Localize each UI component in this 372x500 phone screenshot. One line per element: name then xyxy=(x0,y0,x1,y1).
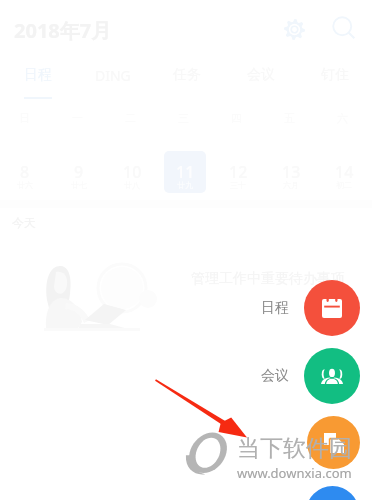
staticText: 管理工作中重要待办事项 xyxy=(191,270,345,288)
staticText: www.downxia.com xyxy=(237,464,352,482)
staticText: 当下软件园 xyxy=(237,434,352,463)
staticText: 日程 xyxy=(24,66,52,84)
staticText: 日程 xyxy=(261,299,289,317)
staticText: 廿九 xyxy=(177,180,193,190)
button[interactable]: New note xyxy=(307,416,360,469)
button[interactable]: Search xyxy=(329,13,359,43)
button[interactable]: 日程 xyxy=(304,280,360,336)
staticText: 今天 xyxy=(12,215,36,230)
button[interactable]: 会议 xyxy=(304,348,360,404)
staticText: 会议 xyxy=(261,367,289,385)
button[interactable]: Close menu xyxy=(306,486,359,500)
staticText: 2018年7月 xyxy=(14,17,112,44)
staticText: 11 xyxy=(176,161,195,183)
button[interactable]: 11 xyxy=(158,151,211,193)
button[interactable]: Settings xyxy=(279,14,309,44)
button[interactable]: 日程 xyxy=(0,58,75,100)
